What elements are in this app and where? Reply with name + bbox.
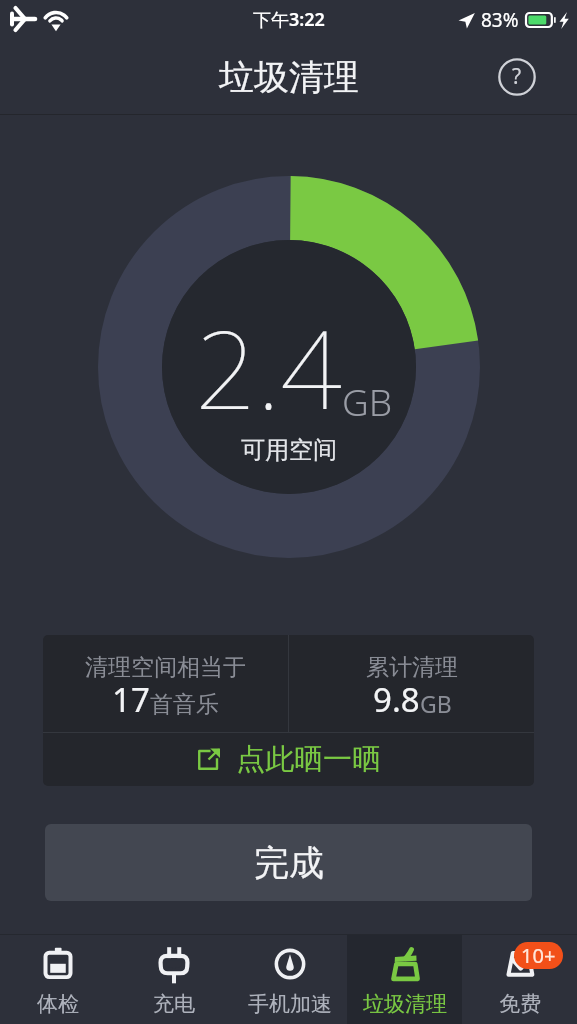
staticText: 垃圾清理	[219, 55, 359, 99]
staticText: ?	[512, 62, 522, 91]
staticText: 下午3:22	[253, 7, 325, 32]
staticText: 清理空间相当于	[85, 653, 246, 682]
staticText: 手机加速	[248, 991, 332, 1017]
staticText: 9.8	[373, 677, 420, 722]
button[interactable]: Help	[498, 58, 536, 96]
staticText: 10+	[521, 942, 556, 969]
staticText: 点此晒一晒	[236, 741, 381, 778]
button[interactable]: 免费	[462, 935, 577, 1024]
button[interactable]: 充电	[116, 935, 232, 1024]
button[interactable]: 垃圾清理	[347, 935, 462, 1024]
staticText: 可用空间	[241, 435, 337, 465]
staticText: 体检	[37, 991, 79, 1017]
staticText: 完成	[254, 841, 324, 885]
staticText: 免费	[499, 991, 541, 1017]
button[interactable]: 点此晒一晒	[43, 733, 534, 786]
button[interactable]: 体检	[0, 935, 116, 1024]
staticText: 83%	[481, 7, 519, 33]
staticText: 充电	[153, 991, 195, 1017]
staticText: GB	[420, 688, 452, 719]
staticText: 2.4	[195, 294, 342, 441]
button[interactable]: 手机加速	[232, 935, 347, 1024]
staticText: 17	[112, 677, 150, 722]
staticText: 累计清理	[366, 653, 458, 682]
staticText: 垃圾清理	[363, 991, 447, 1017]
button[interactable]: 完成	[45, 824, 532, 901]
staticText: 首音乐	[150, 690, 219, 719]
staticText: GB	[342, 376, 393, 426]
